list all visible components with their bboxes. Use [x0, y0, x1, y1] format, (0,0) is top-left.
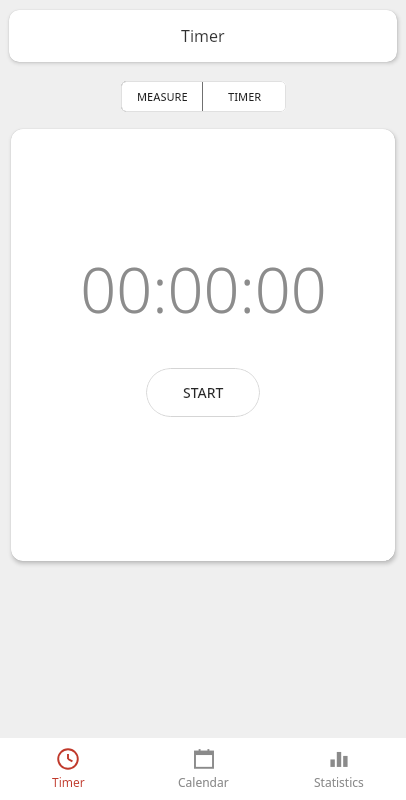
button[interactable]: Timer: [9, 10, 397, 62]
staticText: MEASURE: [137, 89, 188, 104]
button[interactable]: Statistics: [271, 738, 406, 800]
staticText: Timer: [52, 774, 85, 790]
button[interactable]: START: [146, 368, 260, 417]
button[interactable]: Timer: [0, 738, 136, 800]
staticText: Statistics: [314, 774, 364, 790]
button[interactable]: Calendar: [136, 738, 271, 800]
staticText: Calendar: [178, 774, 229, 790]
staticText: START: [183, 383, 224, 402]
staticText: Timer: [181, 25, 225, 47]
staticText: TIMER: [228, 89, 262, 104]
staticText: 00:00:00: [80, 246, 327, 332]
button[interactable]: MEASURE: [121, 81, 203, 112]
button[interactable]: TIMER: [203, 81, 286, 112]
